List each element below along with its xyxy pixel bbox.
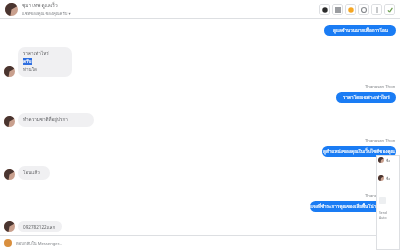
button[interactable]: Mark as done xyxy=(384,4,395,15)
button[interactable]: ราคาเท่าไหร่ xyxy=(4,47,400,77)
staticText: Send xyxy=(379,210,387,215)
button[interactable]: Thanasan Thon xyxy=(0,193,396,212)
staticText: Thanasan Thon xyxy=(365,138,396,144)
staticText: ครับ xyxy=(23,58,32,65)
button[interactable]: Info xyxy=(319,4,330,15)
button[interactable]: Send xyxy=(379,210,387,220)
button[interactable]: ดูแลจำนวนมากเพื่อการโอน xyxy=(0,25,396,36)
staticText: แชทของคุณ ของคุณครับ ▾ xyxy=(22,10,71,17)
staticText: 092782122แลก xyxy=(23,224,56,229)
button[interactable]: Mute xyxy=(358,4,369,15)
staticText: ราคาเท่าไหร่ xyxy=(23,50,49,57)
staticText: Thanasan Thon xyxy=(365,193,396,199)
button[interactable]: ชุมา เทพ ดูแลเร็ว xyxy=(22,1,319,17)
button[interactable]: Archive xyxy=(332,4,343,15)
button[interactable]: Thanasan Thon xyxy=(0,84,396,103)
staticText: แจงที่ชำระการคุณของเสียพื้นโน่าไว้ไหมครั… xyxy=(310,203,396,210)
button[interactable]: ตอบกลับใน Messenger... xyxy=(4,236,396,250)
staticText: ดูแลจำนวนมากเพื่อการโอน xyxy=(333,27,388,34)
staticText: Auto xyxy=(379,215,387,220)
button[interactable]: ชื่อ xyxy=(378,175,398,181)
button[interactable]: 092782122แลก xyxy=(4,221,400,232)
staticText: ชื่อ xyxy=(386,158,391,163)
button[interactable]: More options xyxy=(371,4,382,15)
staticText: ชื่อ xyxy=(386,176,391,181)
staticText: ตอบกลับใน Messenger... xyxy=(16,240,63,247)
staticText: โอนแล้วค่ะ xyxy=(23,169,45,176)
button[interactable]: Thanasan Thon xyxy=(0,138,396,157)
button[interactable]: ทำความชาติที่อยู่ปรกานม.20000ครับ xyxy=(4,113,400,127)
button[interactable]: ชื่อ xyxy=(378,157,398,163)
button[interactable]: โอนแล้วค่ะ xyxy=(4,166,400,180)
staticText: Thanasan Thon xyxy=(365,84,396,90)
staticText: ราคาโดยเฉพาะเท่าไหร่ xyxy=(343,94,390,101)
staticText: ท่านใด xyxy=(23,66,37,73)
staticText: ชุมา เทพ ดูแลเร็ว xyxy=(22,1,58,9)
staticText: ดูตำแหน่งของคุณในเว็บไซต์ของคุณ xyxy=(323,148,395,155)
staticText: ทำความชาติที่อยู่ปรกานม.20000ครับ xyxy=(23,116,89,123)
button[interactable]: Flag xyxy=(345,4,356,15)
